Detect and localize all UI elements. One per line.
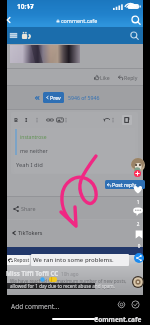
staticText: 1 xyxy=(132,199,144,205)
button[interactable]: Profile xyxy=(131,158,145,172)
button[interactable]: Like xyxy=(92,71,112,84)
button[interactable]: Comments xyxy=(132,207,144,216)
staticText: comment.cafe xyxy=(61,17,98,24)
staticText: Repost xyxy=(14,257,30,263)
staticText: Like xyxy=(100,74,110,81)
button[interactable]: Home xyxy=(20,30,32,42)
staticText: 5946 of 5946 xyxy=(68,94,100,101)
staticText: We ran into some problems. xyxy=(33,256,114,264)
staticText: Yeah I did xyxy=(16,161,43,169)
staticText: 0 xyxy=(133,243,145,249)
staticText: Reply xyxy=(124,74,138,81)
button[interactable]: Back xyxy=(3,15,13,25)
staticText: Add comment... xyxy=(11,302,60,311)
button[interactable]: Save xyxy=(133,230,145,239)
button[interactable]: Link xyxy=(46,116,54,124)
button[interactable]: Repost xyxy=(7,255,30,265)
staticText: allowed for 1 day due to recent abuse an… xyxy=(10,283,115,289)
staticText: Prev xyxy=(50,94,61,101)
staticText: me neither xyxy=(20,147,48,154)
button[interactable]: Search xyxy=(128,29,141,42)
staticText: I xyxy=(25,116,28,124)
button[interactable] xyxy=(65,117,67,123)
button[interactable]: TikTokers xyxy=(10,227,45,238)
button[interactable]: Post reply xyxy=(105,180,145,189)
staticText: Comment.cafe xyxy=(94,315,142,324)
button[interactable]: Link xyxy=(46,116,54,124)
staticText: 2 xyxy=(132,221,144,227)
button[interactable]: Like xyxy=(132,185,144,194)
button[interactable]: Menu xyxy=(8,30,19,41)
staticText: Miss Tiffi Toffi CC xyxy=(6,269,59,277)
button[interactable]: B xyxy=(14,116,18,124)
staticText: Share xyxy=(21,205,36,212)
button[interactable]: Follow xyxy=(134,170,141,177)
button[interactable]: Image xyxy=(56,116,64,124)
button[interactable]: Expand xyxy=(122,115,132,125)
button[interactable] xyxy=(112,117,114,123)
staticText: Post reply xyxy=(112,181,137,188)
button[interactable]: Share xyxy=(134,253,144,263)
staticText: 10h ago xyxy=(61,271,79,277)
button[interactable]: Image xyxy=(56,116,64,124)
button[interactable]: Share xyxy=(11,203,38,214)
button[interactable]: Expand xyxy=(122,115,132,125)
staticText: TikTokers xyxy=(18,229,43,236)
staticText: instantrose xyxy=(20,134,47,141)
staticText: We have reached the maximum number of ne… xyxy=(10,278,127,291)
staticText: 10:17 xyxy=(17,2,34,11)
button[interactable]: Search xyxy=(129,13,143,27)
staticText: B xyxy=(14,116,18,124)
button[interactable] xyxy=(36,117,38,123)
button[interactable]: First page xyxy=(34,94,42,102)
button[interactable]: I xyxy=(25,116,28,124)
button[interactable]: Mention xyxy=(117,300,126,309)
button[interactable]: instantrose xyxy=(14,128,135,173)
button[interactable]: Prev xyxy=(43,92,64,103)
button[interactable]: Reply xyxy=(116,71,140,84)
button[interactable]: Undo xyxy=(103,116,111,124)
button[interactable]: Emoji xyxy=(131,300,140,309)
button[interactable]: Undo xyxy=(103,116,111,124)
